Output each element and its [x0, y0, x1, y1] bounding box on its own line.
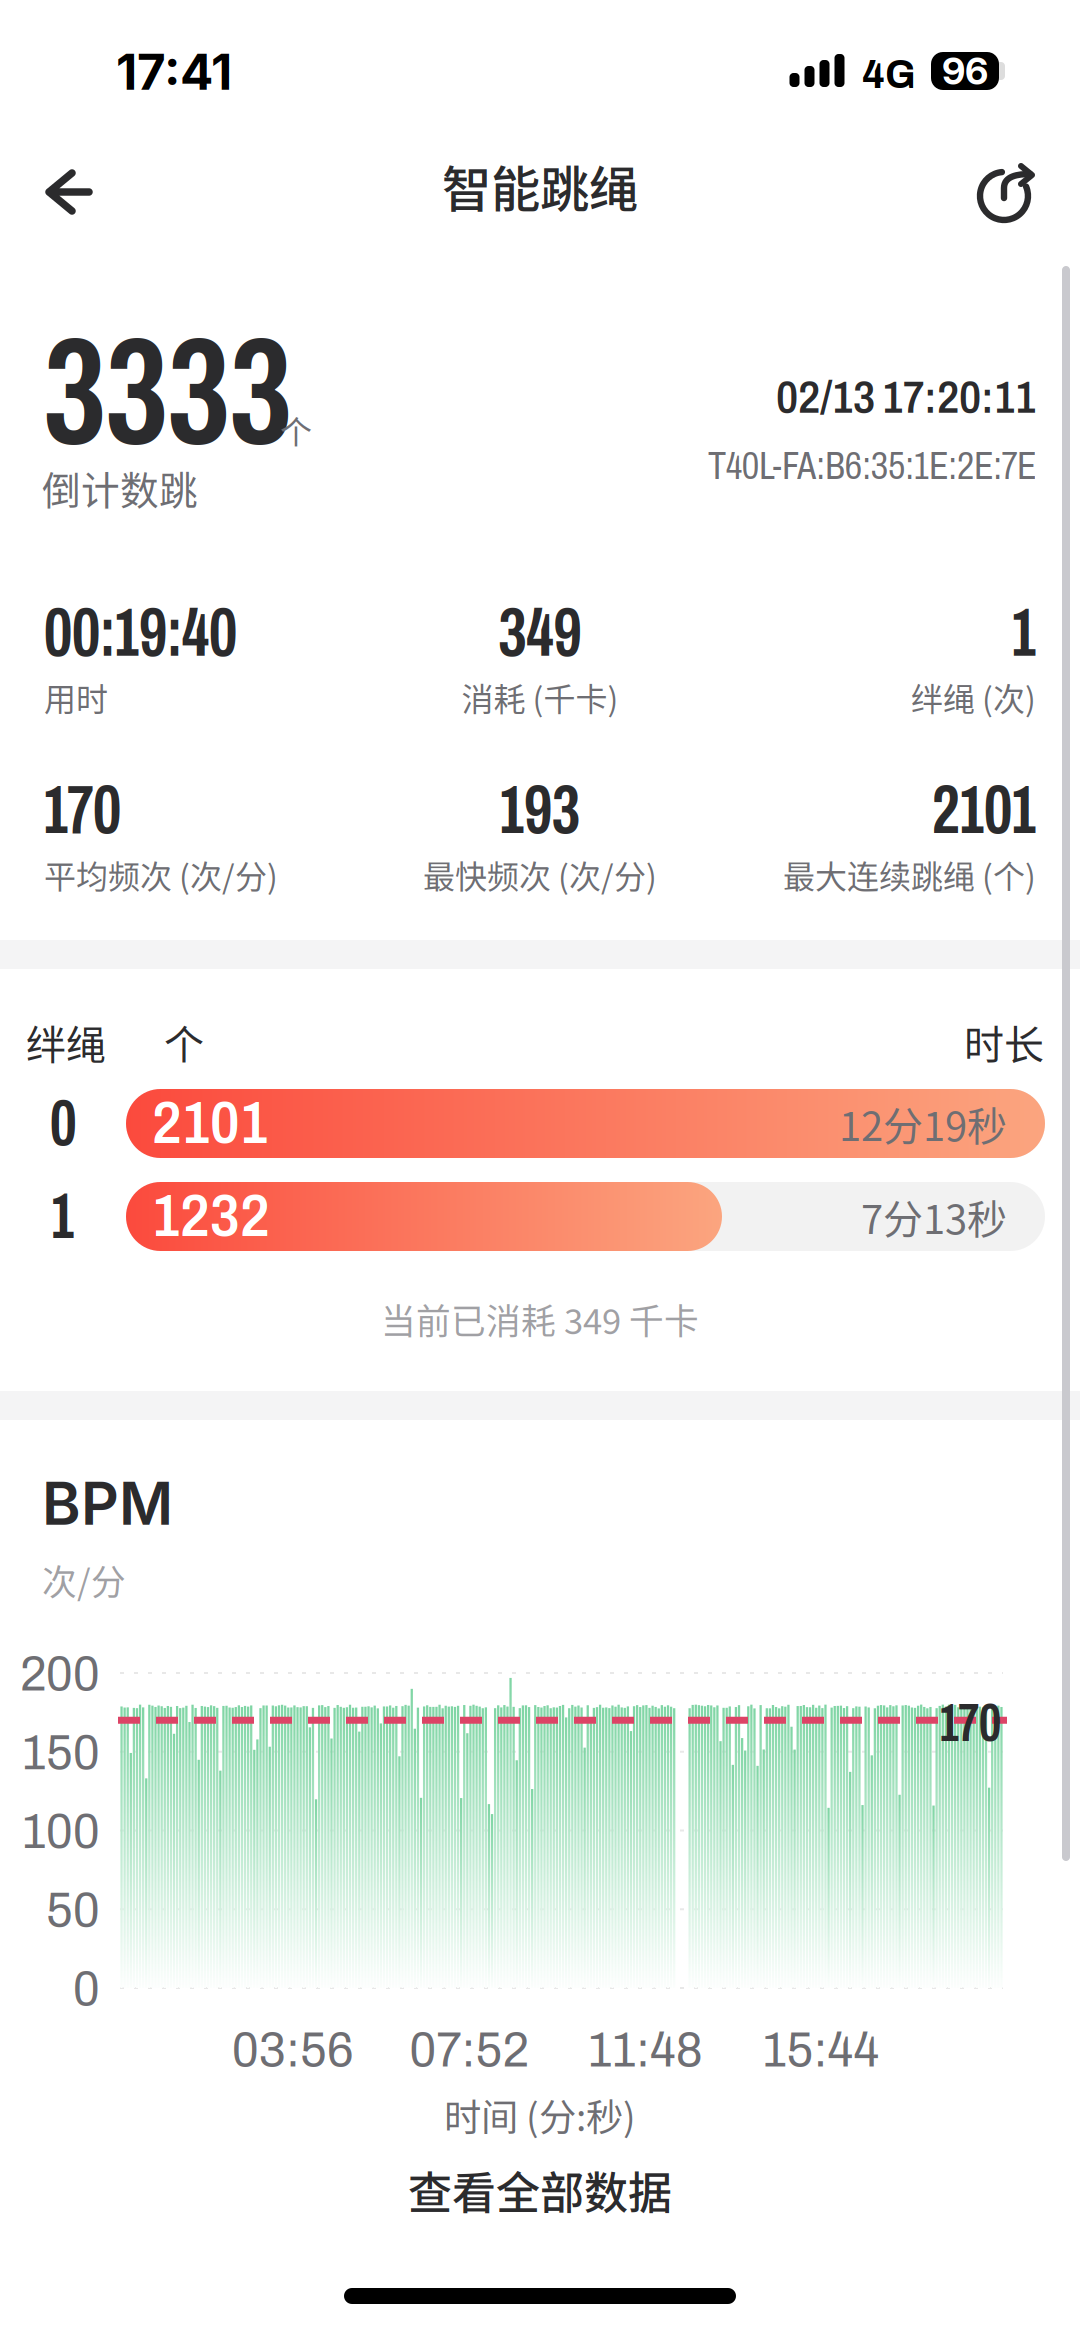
button[interactable]: 查看全部数据: [0, 2140, 1080, 2240]
staticText: 100: [22, 1803, 100, 1859]
staticText: 0: [50, 1089, 76, 1158]
staticText: 170: [44, 773, 121, 847]
staticText: 3333: [44, 312, 292, 474]
staticText: 00:19:40: [44, 596, 237, 670]
staticText: 17:41: [116, 42, 232, 102]
staticText: 193: [500, 773, 580, 847]
staticText: 个: [164, 1013, 204, 1071]
staticText: 绊绳: [26, 1013, 106, 1071]
staticText: 150: [22, 1725, 100, 1780]
staticText: 次/分: [42, 1555, 126, 1605]
staticText: 170: [940, 1694, 1001, 1752]
staticText: 07:52: [409, 2022, 528, 2077]
staticText: 智能跳绳: [442, 150, 638, 221]
staticText: 用时: [44, 674, 108, 720]
staticText: BPM: [42, 1468, 173, 1539]
staticText: 1: [51, 1182, 74, 1251]
staticText: 个: [280, 407, 312, 453]
staticText: 绊绳 (次): [911, 674, 1036, 720]
staticText: 最快频次 (次/分): [423, 851, 657, 898]
staticText: 12分19秒: [839, 1094, 1007, 1152]
staticText: 最大连续跳绳 (个): [783, 851, 1036, 898]
staticText: 349: [498, 596, 581, 670]
staticText: 查看全部数据: [408, 2158, 672, 2222]
button[interactable]: Share: [948, 139, 1064, 249]
staticText: T40L-FA:B6:35:1E:2E:7E: [708, 445, 1036, 487]
staticText: 4G: [862, 53, 916, 96]
staticText: 15:44: [762, 2022, 879, 2077]
staticText: 03:56: [232, 2022, 354, 2077]
staticText: 02/13 17:20:11: [776, 374, 1036, 422]
staticText: 倒计数跳: [42, 460, 198, 516]
staticText: 平均频次 (次/分): [44, 851, 278, 898]
button[interactable]: Back: [9, 137, 129, 247]
staticText: 时长: [964, 1013, 1044, 1071]
staticText: 1: [1012, 596, 1036, 670]
staticText: 时间 (分:秒): [444, 2088, 636, 2142]
staticText: 50: [46, 1882, 100, 1937]
staticText: 当前已消耗 349 千卡: [381, 1294, 699, 1344]
staticText: 11:48: [588, 2022, 702, 2077]
staticText: 2101: [932, 773, 1036, 847]
staticText: 消耗 (千卡): [461, 674, 618, 720]
staticText: 7分13秒: [861, 1187, 1007, 1245]
staticText: 2101: [152, 1092, 268, 1155]
staticText: 96: [942, 48, 988, 94]
staticText: 0: [73, 1961, 100, 2016]
staticText: 200: [20, 1646, 100, 1701]
staticText: 1232: [152, 1185, 270, 1248]
